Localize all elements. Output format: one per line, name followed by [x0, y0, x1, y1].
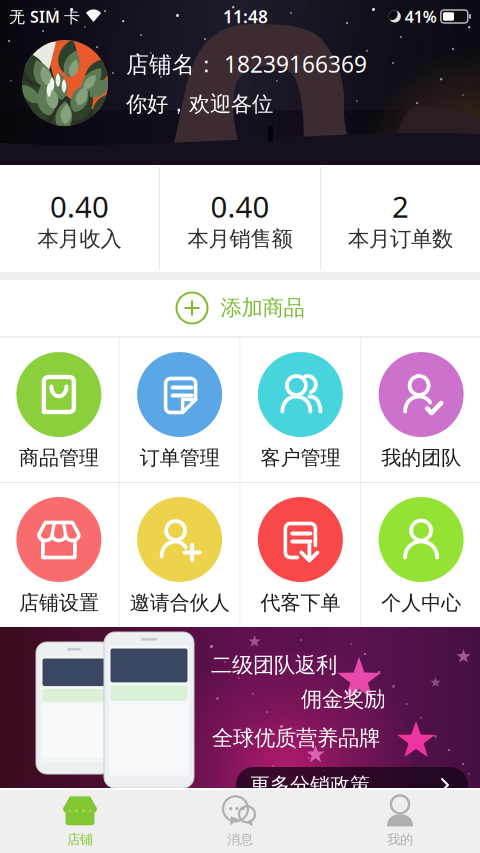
button[interactable]: 消息 — [160, 790, 320, 853]
staticText: 11:48 — [223, 5, 268, 28]
staticText: 全球优质营养品牌 — [212, 725, 380, 751]
staticText: 商品管理 — [19, 445, 99, 470]
staticText: 客户管理 — [260, 445, 340, 470]
staticText: 店铺 — [67, 831, 93, 848]
staticText: 41% — [405, 6, 437, 27]
staticText: 我的团队 — [381, 445, 461, 470]
staticText: 订单管理 — [140, 445, 220, 470]
staticText: 佣金奖励 — [301, 686, 385, 712]
staticText: 店铺设置 — [19, 590, 99, 615]
staticText: 你好，欢迎各位 — [126, 91, 273, 117]
staticText: 代客下单 — [260, 590, 340, 615]
button[interactable]: 店铺 — [0, 790, 160, 853]
staticText: 个人中心 — [381, 590, 461, 615]
staticText: 更多分销政策 — [250, 773, 370, 797]
button[interactable]: 店铺设置 — [0, 483, 119, 627]
staticText: 消息 — [227, 831, 253, 848]
button[interactable]: 邀请合伙人 — [120, 483, 240, 627]
staticText: 0.40 — [210, 187, 269, 226]
staticText: 2 — [392, 187, 409, 226]
staticText: 本月订单数 — [348, 226, 453, 252]
button[interactable]: 2 — [321, 165, 480, 272]
staticText: 无 SIM 卡 — [9, 6, 80, 27]
staticText: 邀请合伙人 — [130, 590, 230, 615]
button[interactable]: 店铺头像 — [22, 40, 108, 126]
button[interactable]: 0.40 — [160, 165, 320, 272]
staticText: 店铺名： 18239166369 — [126, 49, 367, 79]
staticText: 0.40 — [50, 187, 109, 226]
button[interactable]: 客户管理 — [240, 338, 360, 482]
button[interactable]: 我的团队 — [361, 338, 480, 482]
staticText: 二级团队返利 — [211, 652, 337, 678]
staticText: 我的 — [387, 831, 413, 848]
staticText: 本月销售额 — [187, 226, 292, 252]
staticText: 本月收入 — [37, 226, 121, 252]
staticText: 添加商品 — [220, 295, 304, 321]
button[interactable]: 商品管理 — [0, 338, 119, 482]
button[interactable]: 二级团队返利 — [0, 627, 480, 788]
button[interactable]: 代客下单 — [240, 483, 360, 627]
button[interactable]: 添加商品 — [0, 280, 480, 336]
button[interactable]: 个人中心 — [361, 483, 480, 627]
button[interactable]: 0.40 — [0, 165, 159, 272]
button[interactable]: 我的 — [320, 790, 480, 853]
button[interactable]: 订单管理 — [120, 338, 240, 482]
